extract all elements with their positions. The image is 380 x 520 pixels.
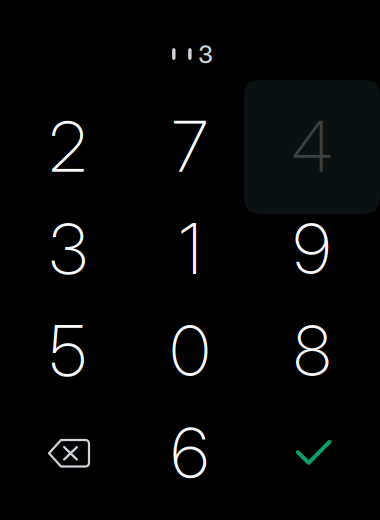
button[interactable]: Confirm (251, 402, 373, 504)
staticText: 3 (49, 207, 87, 291)
staticText: 7 (172, 105, 208, 188)
button[interactable]: 5 (7, 300, 129, 402)
staticText: 1 (179, 207, 201, 291)
button[interactable]: 4 (251, 95, 373, 198)
staticText: 2 (49, 105, 87, 188)
button[interactable]: 3 (7, 198, 129, 300)
staticText: 5 (49, 309, 86, 393)
button[interactable]: 2 (7, 95, 129, 198)
button[interactable]: 8 (251, 300, 373, 402)
staticText: 3 (198, 40, 213, 69)
button[interactable]: Delete (7, 402, 129, 504)
button[interactable]: 7 (129, 95, 251, 198)
staticText: 6 (171, 411, 209, 495)
staticText: 4 (291, 105, 332, 188)
staticText: 0 (170, 309, 210, 393)
button[interactable]: 9 (251, 198, 373, 300)
staticText: 9 (293, 207, 331, 291)
staticText: 8 (293, 309, 330, 393)
button[interactable]: 1 (129, 198, 251, 300)
button[interactable]: 0 (129, 300, 251, 402)
button[interactable]: 6 (129, 402, 251, 504)
